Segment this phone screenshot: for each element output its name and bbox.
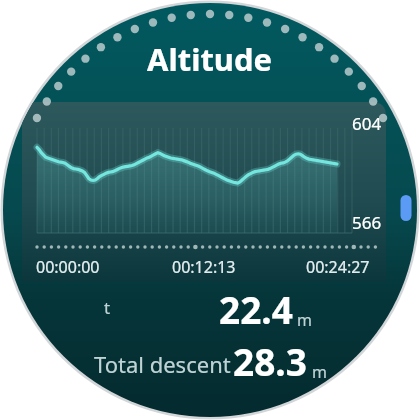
button[interactable]: Altitude workout chart xyxy=(0,0,420,420)
